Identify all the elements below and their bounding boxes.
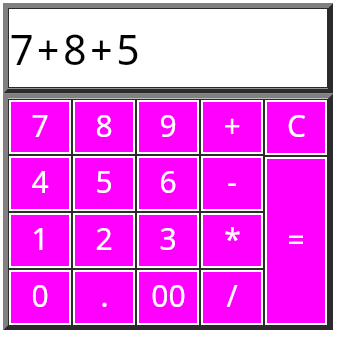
button[interactable]: C: [264, 99, 328, 156]
button[interactable]: 3: [136, 212, 200, 269]
button[interactable]: 00: [136, 269, 200, 326]
button[interactable]: 0: [8, 269, 72, 326]
button[interactable]: .: [72, 269, 136, 326]
staticText: 1: [31, 218, 49, 259]
button[interactable]: 6: [136, 155, 200, 212]
staticText: 8: [95, 105, 113, 146]
staticText: *: [224, 218, 241, 259]
button[interactable]: 4: [8, 155, 72, 212]
staticText: 2: [95, 218, 113, 259]
staticText: 3: [159, 218, 177, 259]
staticText: 9: [159, 105, 177, 146]
button[interactable]: +: [200, 99, 264, 155]
staticText: -: [227, 161, 237, 202]
button[interactable]: 5: [72, 155, 136, 212]
button[interactable]: *: [200, 212, 264, 269]
button[interactable]: 7+8+5: [8, 8, 328, 88]
button[interactable]: 1: [8, 212, 72, 269]
button[interactable]: -: [200, 155, 264, 212]
staticText: 5: [95, 161, 113, 202]
staticText: 6: [159, 161, 177, 202]
staticText: /: [226, 275, 238, 316]
staticText: .: [100, 275, 109, 316]
button[interactable]: /: [200, 269, 264, 326]
button[interactable]: =: [264, 156, 328, 326]
button[interactable]: 8: [72, 99, 136, 155]
staticText: 7+8+5: [9, 20, 143, 77]
button[interactable]: 9: [136, 99, 200, 155]
staticText: C: [287, 105, 306, 146]
staticText: =: [287, 219, 305, 260]
staticText: 0: [31, 275, 49, 316]
staticText: +: [223, 105, 241, 146]
staticText: 7: [31, 105, 49, 146]
staticText: 4: [31, 161, 49, 202]
button[interactable]: 7: [8, 99, 72, 155]
staticText: 00: [151, 275, 186, 316]
button[interactable]: 2: [72, 212, 136, 269]
